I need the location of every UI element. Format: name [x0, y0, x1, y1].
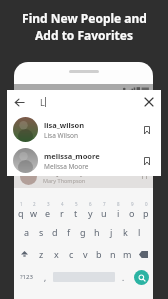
button[interactable]: 1 — [14, 199, 27, 221]
button[interactable]: john_carter — [14, 143, 153, 165]
staticText: L — [40, 96, 45, 108]
staticText: l — [138, 226, 141, 238]
button[interactable]: mary_thompson — [14, 165, 153, 187]
staticText: . — [122, 272, 125, 283]
staticText: 9 — [131, 201, 134, 207]
button[interactable]: x — [49, 243, 64, 265]
button[interactable]: d — [48, 221, 62, 243]
staticText: g — [80, 226, 86, 238]
button[interactable]: 2 — [27, 199, 41, 221]
staticText: m — [123, 248, 132, 260]
staticText: 1 — [20, 201, 23, 207]
staticText: , — [44, 272, 47, 283]
staticText: n — [110, 248, 116, 260]
button[interactable]: s — [34, 221, 48, 243]
staticText: e — [45, 207, 51, 219]
staticText: i — [117, 207, 120, 219]
button[interactable]: c — [64, 243, 78, 265]
staticText: john_carter — [43, 146, 80, 155]
staticText: q — [18, 207, 24, 219]
staticText: Melissa Moore — [44, 162, 89, 171]
staticText: Mary Thompson — [43, 177, 86, 184]
button[interactable]: ?123 — [14, 265, 39, 289]
button[interactable]: , — [39, 265, 51, 289]
button[interactable]: Add to favorites — [139, 153, 155, 169]
staticText: s — [39, 226, 44, 238]
staticText: d — [52, 226, 58, 238]
staticText: 8 — [117, 201, 120, 207]
button[interactable]: b — [92, 243, 106, 265]
staticText: t — [74, 207, 78, 219]
button[interactable]: a — [20, 221, 34, 243]
button[interactable]: h — [90, 221, 104, 243]
button[interactable]: g — [76, 221, 90, 243]
button[interactable]: . — [117, 265, 129, 289]
button[interactable]: Shift — [14, 243, 34, 265]
button[interactable]: 8 — [111, 199, 125, 221]
staticText: 4 — [61, 201, 64, 207]
button[interactable]: 6 — [83, 199, 97, 221]
button[interactable]: n — [106, 243, 120, 265]
staticText: Lisa Wilson — [44, 131, 78, 140]
staticText: z — [39, 248, 44, 260]
button[interactable]: Back — [7, 90, 31, 114]
button[interactable]: 9 — [125, 199, 139, 221]
staticText: o — [129, 207, 135, 219]
staticText: John Carter — [43, 155, 73, 162]
staticText: ?123 — [20, 273, 33, 281]
staticText: v — [83, 248, 88, 260]
staticText: 3 — [47, 201, 50, 207]
button[interactable]: 0 — [139, 199, 153, 221]
button[interactable]: 5 — [69, 199, 83, 221]
button[interactable]: Add to favorites — [139, 122, 155, 138]
staticText: 7 — [103, 201, 106, 207]
staticText: lisa_wilson — [44, 120, 85, 130]
button[interactable]: l — [132, 221, 146, 243]
staticText: j — [110, 226, 113, 238]
staticText: Find New People and — [22, 10, 147, 26]
button[interactable]: 4 — [55, 199, 69, 221]
staticText: r — [60, 207, 64, 219]
button[interactable]: k — [118, 221, 132, 243]
staticText: p — [143, 207, 149, 219]
staticText: melissa_moore — [44, 151, 100, 161]
staticText: u — [101, 207, 107, 219]
button[interactable]: lisa_wilson — [7, 114, 161, 145]
button[interactable]: Search — [134, 270, 149, 285]
staticText: a — [24, 226, 30, 238]
button[interactable]: Backspace — [134, 243, 153, 265]
staticText: y — [88, 207, 93, 219]
button[interactable]: z — [34, 243, 49, 265]
staticText: Add to Favorites — [35, 27, 133, 43]
staticText: h — [94, 226, 100, 238]
staticText: x — [54, 248, 59, 260]
staticText: 2 — [33, 201, 36, 207]
staticText: 0 — [145, 201, 148, 207]
button[interactable]: m — [120, 243, 134, 265]
button[interactable]: melissa_moore — [7, 145, 161, 176]
button[interactable]: 7 — [97, 199, 111, 221]
button[interactable]: 3 — [41, 199, 55, 221]
staticText: b — [96, 248, 102, 260]
staticText: f — [67, 226, 71, 238]
staticText: c — [69, 248, 74, 260]
button[interactable]: f — [62, 221, 76, 243]
staticText: k — [123, 226, 128, 238]
button[interactable]: Clear search — [137, 90, 161, 114]
staticText: 5 — [75, 201, 78, 207]
staticText: 6 — [89, 201, 92, 207]
button[interactable]: j — [104, 221, 118, 243]
staticText: mary_thompson — [43, 168, 96, 177]
button[interactable]: v — [78, 243, 92, 265]
staticText: w — [30, 207, 38, 219]
